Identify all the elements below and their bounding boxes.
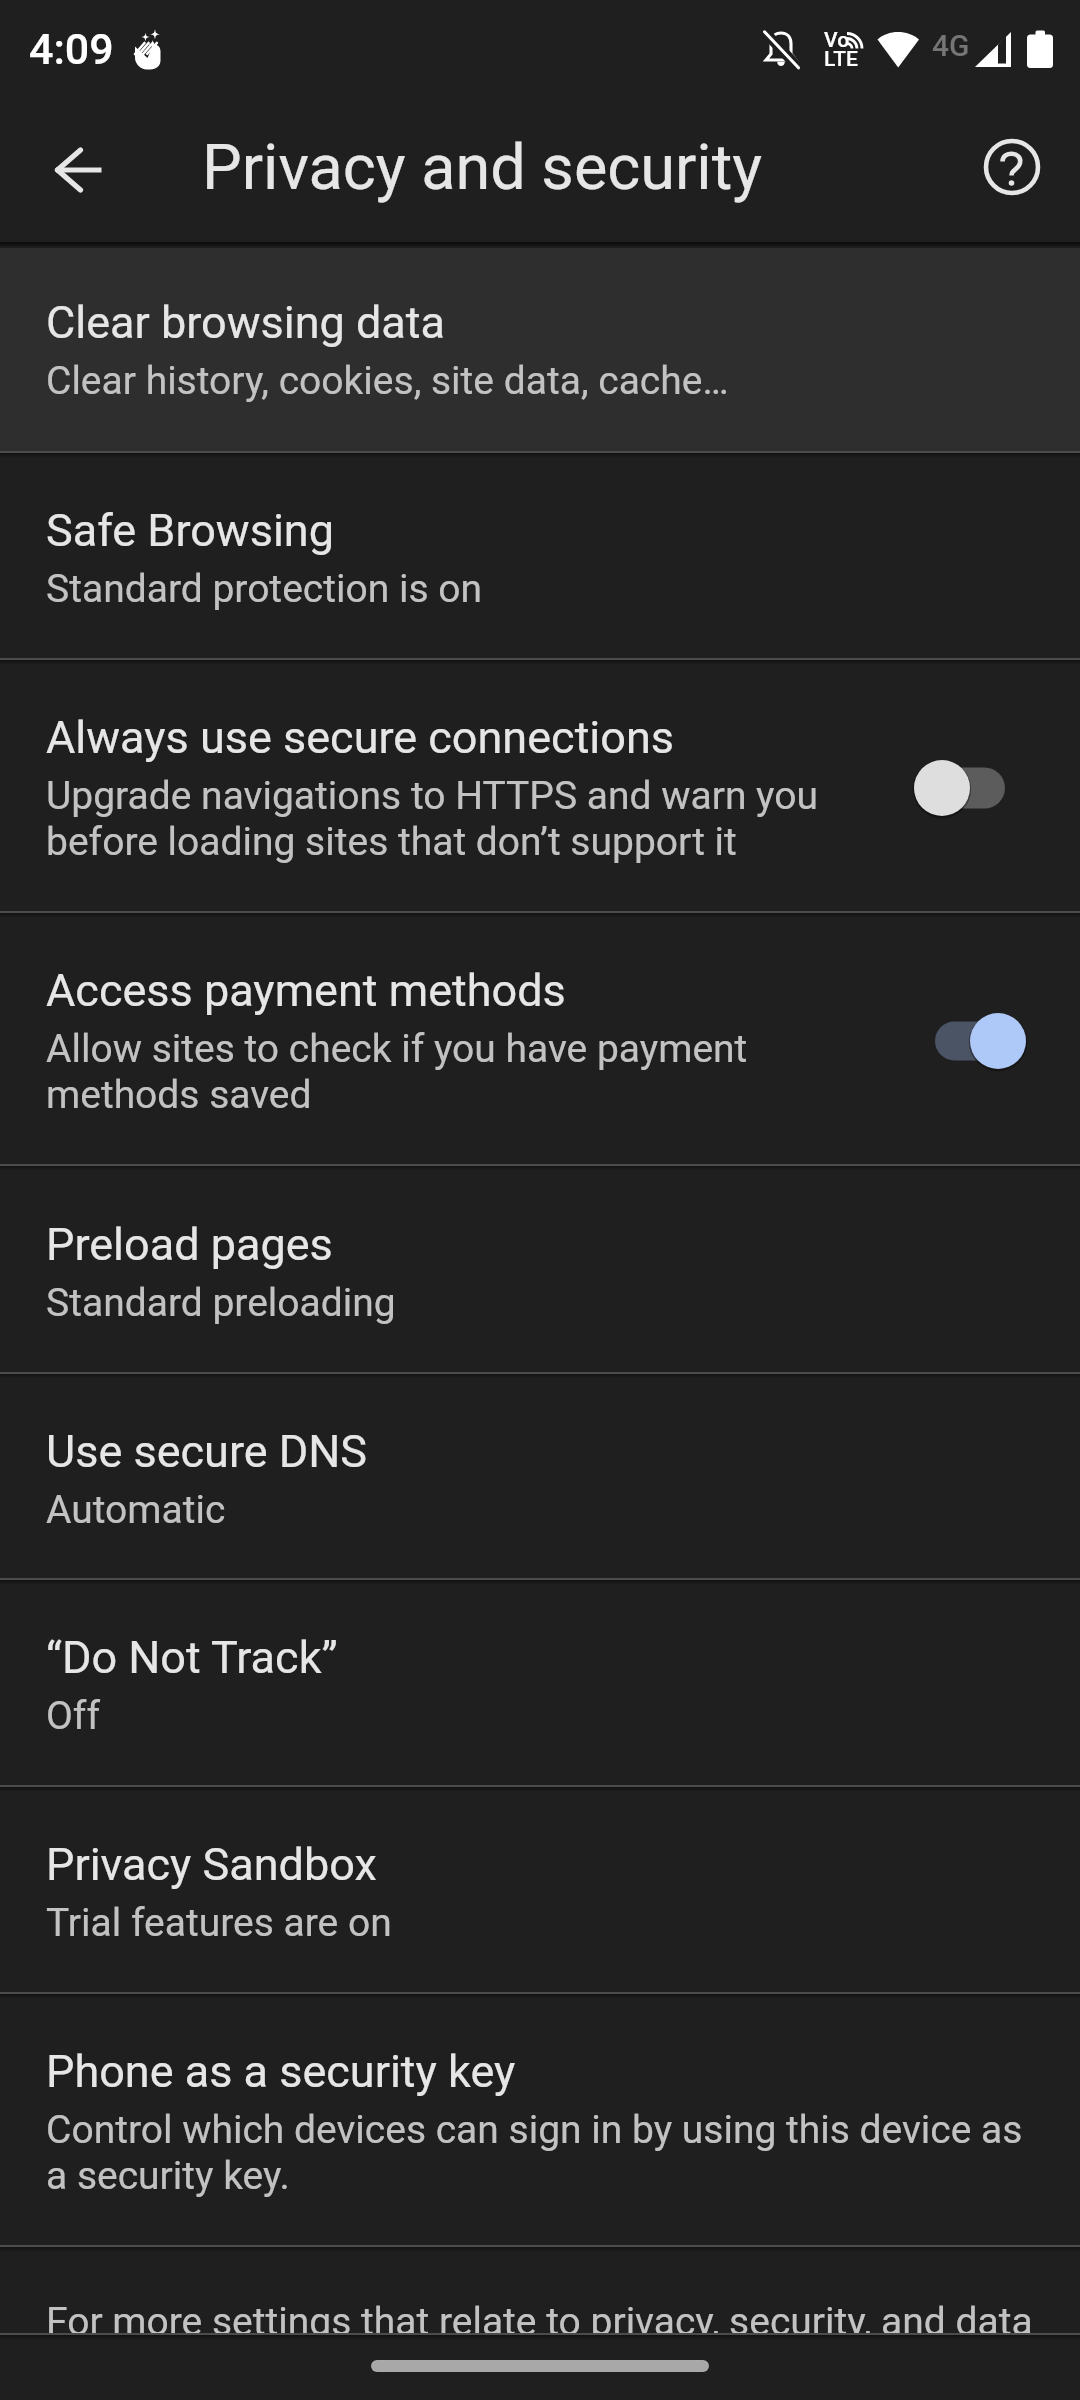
staticText: Standard preloading [46,1280,396,1326]
staticText: Privacy Sandbox [46,1838,377,1891]
staticText: Upgrade navigations to HTTPS and warn yo… [46,773,819,865]
button[interactable]: Access payment methods [0,918,1080,1164]
staticText: Off [46,1693,100,1739]
button[interactable]: “Do Not Track” [0,1585,1080,1785]
staticText: Clear history, cookies, site data, cache… [46,358,729,404]
staticText: Automatic [46,1487,226,1533]
staticText: LTE [824,47,858,72]
button[interactable]: Safe Browsing [0,458,1080,658]
staticText: 4G [932,28,970,63]
staticText: Vo [824,28,850,53]
staticText: Trial features are on [46,1900,392,1946]
staticText: Allow sites to check if you have payment… [46,1026,748,1118]
staticText: Preload pages [46,1218,333,1271]
staticText: Clear browsing data [46,296,446,349]
staticText: 4:09 [29,24,114,74]
staticText: Access payment methods [46,964,566,1017]
button[interactable]: Back [23,114,135,226]
staticText: “Do Not Track” [46,1631,338,1684]
staticText: Control which devices can sign in by usi… [46,2107,1023,2199]
staticText: For more settings that relate to privacy… [46,2299,1033,2345]
button[interactable]: Switch off [920,728,1080,848]
button[interactable]: Privacy Sandbox [0,1792,1080,1992]
staticText: Standard protection is on [46,566,482,612]
button[interactable]: Always use secure connections [0,665,1080,911]
button[interactable]: Phone as a security key [0,1999,1080,2245]
staticText: Phone as a security key [46,2045,516,2098]
staticText: Safe Browsing [46,504,334,557]
staticText: Always use secure connections [46,711,675,764]
button[interactable]: Clear browsing data [0,248,1080,451]
staticText: Privacy and security [202,131,763,205]
button[interactable]: Switch on [920,981,1080,1101]
button[interactable]: Preload pages [0,1171,1080,1372]
button[interactable]: Use secure DNS [0,1379,1080,1578]
staticText: Use secure DNS [46,1425,368,1478]
button[interactable]: Help [956,111,1068,223]
